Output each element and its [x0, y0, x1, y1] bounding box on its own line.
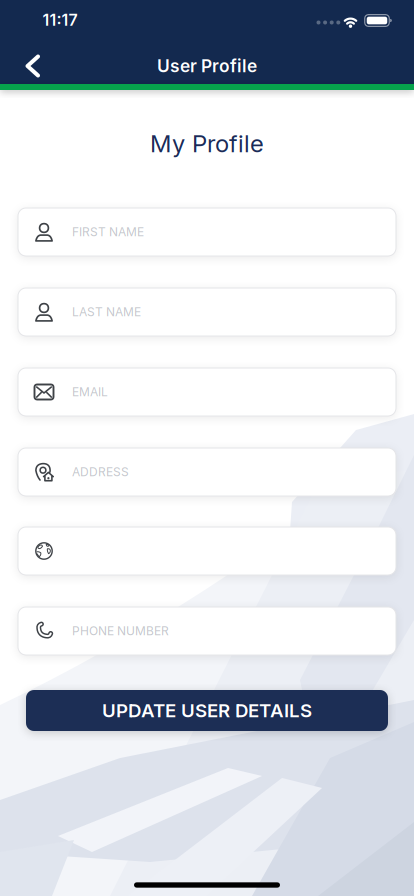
staticText: ADDRESS [72, 465, 129, 479]
button[interactable]: Phone number [18, 607, 396, 655]
staticText: User Profile [157, 56, 257, 76]
staticText: LAST NAME [72, 305, 141, 319]
staticText: PHONE NUMBER [72, 624, 169, 638]
button[interactable]: Last name [18, 288, 396, 336]
button[interactable]: Back [16, 46, 49, 86]
button[interactable]: Country [18, 527, 396, 575]
button[interactable]: UPDATE USER DETAILS [26, 690, 388, 731]
staticText: 11:17 [42, 11, 77, 29]
staticText: EMAIL [72, 385, 108, 399]
button[interactable]: Email [18, 368, 396, 416]
staticText: My Profile [150, 129, 264, 158]
staticText: UPDATE USER DETAILS [102, 699, 312, 721]
button[interactable]: First name [18, 208, 396, 256]
staticText: FIRST NAME [72, 225, 144, 239]
button[interactable]: Address [18, 448, 396, 496]
